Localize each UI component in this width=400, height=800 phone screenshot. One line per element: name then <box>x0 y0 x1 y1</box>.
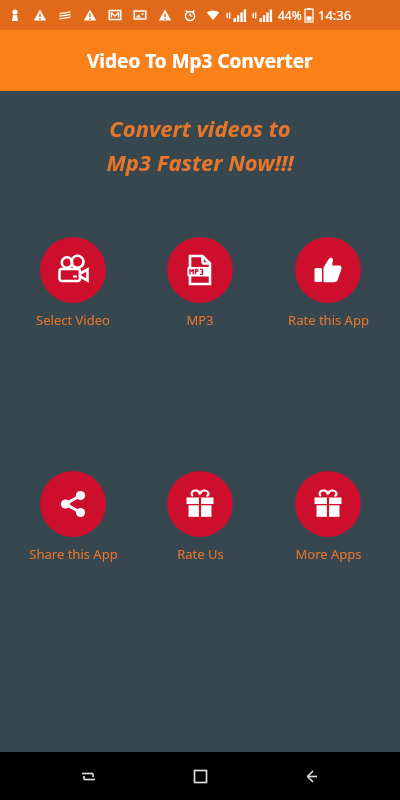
button[interactable]: Rate Us <box>145 469 255 565</box>
button[interactable]: Select Video <box>18 235 128 331</box>
staticText: Convert videos to <box>109 113 291 143</box>
button[interactable]: Rate this App <box>273 235 383 331</box>
staticText: Rate Us <box>177 545 224 563</box>
staticText: Rate this App <box>288 311 369 329</box>
button[interactable]: More Apps <box>273 469 383 565</box>
button[interactable]: Home <box>176 752 224 800</box>
staticText: 44% <box>278 7 302 23</box>
staticText: 14:36 <box>318 6 352 24</box>
staticText: Share this App <box>29 545 118 563</box>
button[interactable]: Share this App <box>18 469 128 565</box>
staticText: Mp3 Faster Now!!! <box>106 147 294 177</box>
button[interactable]: Recents <box>64 752 112 800</box>
staticText: Video To Mp3 Converter <box>87 48 313 74</box>
staticText: More Apps <box>295 545 362 563</box>
button[interactable]: Back <box>288 752 336 800</box>
staticText: MP3 <box>186 311 214 329</box>
staticText: Select Video <box>36 311 110 329</box>
button[interactable]: MP3 <box>145 235 255 331</box>
